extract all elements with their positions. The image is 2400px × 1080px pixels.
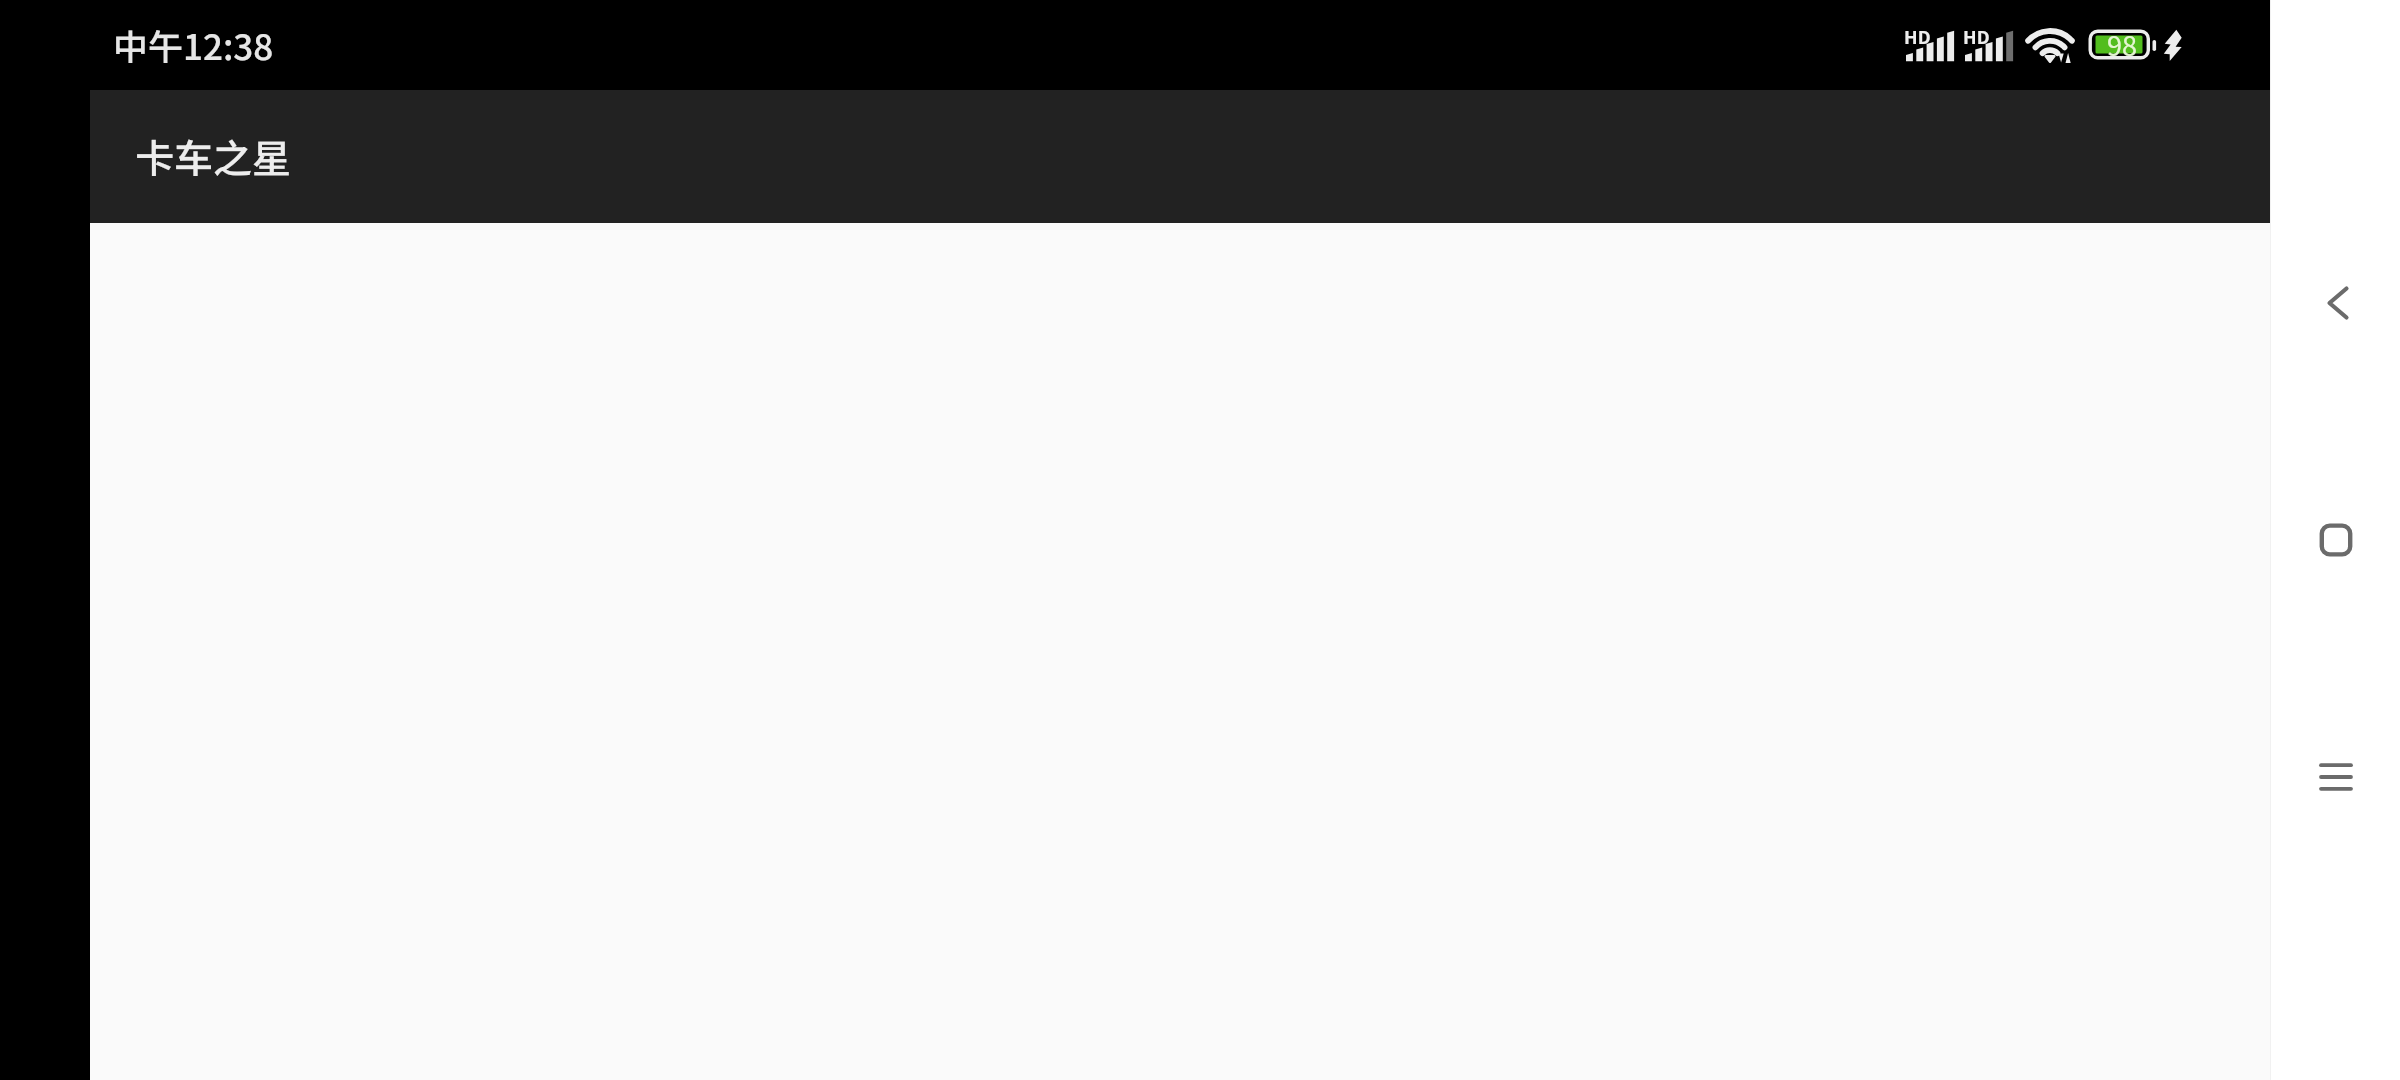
staticText: 98 bbox=[2107, 25, 2137, 64]
staticText: 中午12:38 bbox=[113, 19, 274, 70]
button[interactable]: Back bbox=[2290, 255, 2386, 351]
staticText: HD bbox=[1963, 23, 1990, 49]
button[interactable]: Recent apps bbox=[2288, 729, 2384, 825]
staticText: HD bbox=[1904, 23, 1931, 49]
staticText: 卡车之星 bbox=[135, 128, 292, 184]
button[interactable]: Home bbox=[2288, 492, 2384, 588]
